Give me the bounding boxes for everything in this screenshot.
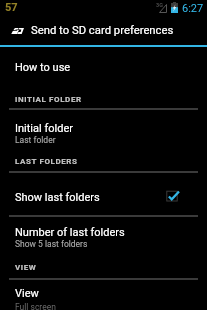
staticText: INITIAL FOLDER xyxy=(15,95,207,104)
button[interactable]: Send to SD card xyxy=(0,16,207,45)
staticText: 6:27 xyxy=(182,2,204,15)
staticText: Last folder xyxy=(15,135,199,145)
button[interactable]: View xyxy=(0,287,207,300)
button[interactable]: Number of last folders xyxy=(0,226,207,239)
button[interactable]: How to use xyxy=(0,61,207,74)
staticText: 57 xyxy=(5,1,18,14)
staticText: LAST FOLDERS xyxy=(15,157,207,166)
staticText: Show 5 last folders xyxy=(15,239,199,249)
staticText: Show last folders xyxy=(15,191,162,204)
staticText: 3G xyxy=(156,2,163,8)
other: Battery charging xyxy=(171,2,179,13)
other: 3G signal xyxy=(156,1,168,13)
other: Send to SD card xyxy=(11,28,24,34)
button[interactable]: Initial folder xyxy=(0,122,207,135)
staticText: VIEW xyxy=(15,263,207,272)
button[interactable]: Show last folders xyxy=(0,187,207,208)
staticText: Full screen xyxy=(15,302,199,310)
staticText: Send to SD card preferences xyxy=(31,24,174,37)
